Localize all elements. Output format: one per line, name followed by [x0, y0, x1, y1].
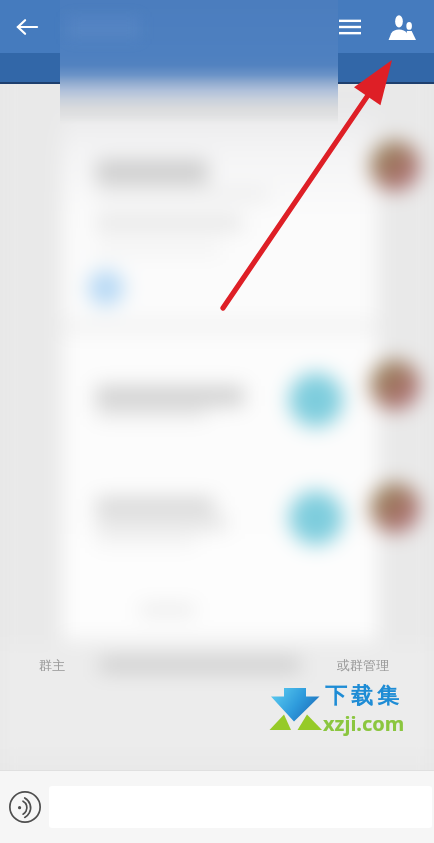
staticText: 下载集 [323, 682, 401, 710]
staticText: xzji.com [323, 710, 405, 737]
button[interactable]: Menu [328, 5, 372, 49]
button[interactable]: Group members [378, 3, 426, 51]
staticText: 群主 [39, 657, 65, 673]
button[interactable]: Back [0, 0, 53, 53]
staticText: 或群管理 [337, 657, 389, 673]
button[interactable]: Voice input [5, 787, 45, 827]
